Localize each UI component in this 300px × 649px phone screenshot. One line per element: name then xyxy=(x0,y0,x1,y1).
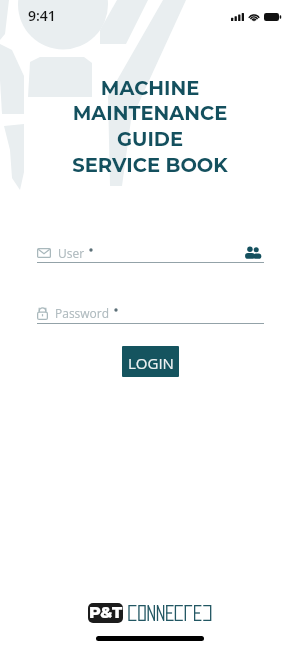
staticText: MACHINE MAINTENANCE GUIDE SERVICE BOOK xyxy=(0,76,300,177)
button[interactable]: LOGIN xyxy=(122,346,179,377)
staticText: LOGIN xyxy=(128,353,174,373)
button[interactable]: Choose user xyxy=(242,243,264,262)
button[interactable]: Password xyxy=(37,303,264,323)
staticText: 9:41 xyxy=(28,6,56,25)
staticText: User xyxy=(58,245,85,261)
button[interactable]: User xyxy=(37,243,264,262)
staticText: P&T xyxy=(89,603,123,623)
staticText: Password xyxy=(55,305,110,321)
